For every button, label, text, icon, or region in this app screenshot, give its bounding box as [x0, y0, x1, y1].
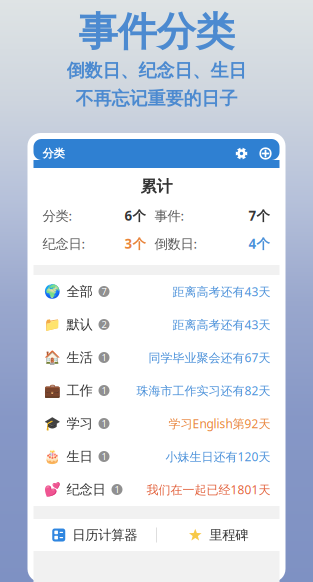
staticText: 📁	[43, 317, 60, 332]
button[interactable]: 📁	[33, 308, 279, 341]
staticText: 工作	[66, 382, 92, 399]
staticText: 1	[114, 483, 119, 496]
button[interactable]: 🏠	[33, 341, 279, 374]
staticText: 6个	[124, 207, 145, 224]
staticText: 学习English第92天	[168, 415, 270, 431]
button[interactable]: 里程碑	[157, 519, 279, 551]
staticText: 1	[101, 417, 106, 430]
button[interactable]: 🎂	[33, 440, 279, 473]
staticText: 距离高考还有43天	[172, 283, 270, 299]
button[interactable]: 日历计算器	[33, 519, 156, 551]
staticText: 同学毕业聚会还有67天	[148, 349, 270, 365]
staticText: 2	[101, 318, 106, 331]
staticText: 3个	[124, 235, 145, 252]
button[interactable]: 💼	[33, 374, 279, 407]
staticText: 事件分类	[78, 7, 234, 57]
staticText: 🌍	[43, 284, 60, 299]
staticText: 7	[101, 285, 106, 298]
staticText: 倒数日、纪念日、生日	[66, 59, 246, 82]
staticText: 🏠	[43, 350, 60, 365]
button[interactable]: 🎓	[33, 407, 279, 440]
staticText: 生活	[66, 349, 92, 366]
staticText: 分类:	[42, 207, 72, 224]
staticText: 里程碑	[209, 527, 248, 543]
staticText: 默认	[66, 316, 92, 333]
staticText: 1	[101, 450, 106, 463]
staticText: 全部	[66, 283, 92, 300]
staticText: 🎂	[43, 449, 60, 464]
button[interactable]: 添加分类	[256, 144, 274, 162]
staticText: 🎓	[43, 416, 60, 431]
staticText: 分类	[42, 146, 64, 161]
staticText: 1	[101, 384, 106, 397]
staticText: 7个	[248, 207, 269, 224]
staticText: 距离高考还有43天	[172, 316, 270, 332]
staticText: 小妹生日还有120天	[165, 448, 270, 464]
staticText: 4个	[248, 235, 269, 252]
staticText: 纪念日	[66, 481, 105, 498]
staticText: 1	[101, 351, 106, 364]
staticText: 倒数日:	[154, 235, 197, 252]
staticText: 💼	[43, 383, 60, 398]
staticText: 事件:	[154, 207, 184, 224]
staticText: 💕	[43, 482, 60, 497]
button[interactable]: 设置	[232, 144, 250, 162]
staticText: 不再忘记重要的日子	[75, 87, 237, 110]
staticText: 生日	[66, 448, 92, 465]
staticText: 纪念日:	[42, 235, 85, 252]
button[interactable]: 💕	[33, 473, 279, 506]
staticText: 学习	[66, 415, 92, 432]
staticText: 日历计算器	[72, 527, 137, 543]
staticText: 累计	[140, 177, 172, 196]
staticText: 珠海市工作实习还有82天	[136, 382, 270, 398]
button[interactable]: 🌍	[33, 275, 279, 308]
staticText: 我们在一起已经1801天	[146, 481, 270, 497]
